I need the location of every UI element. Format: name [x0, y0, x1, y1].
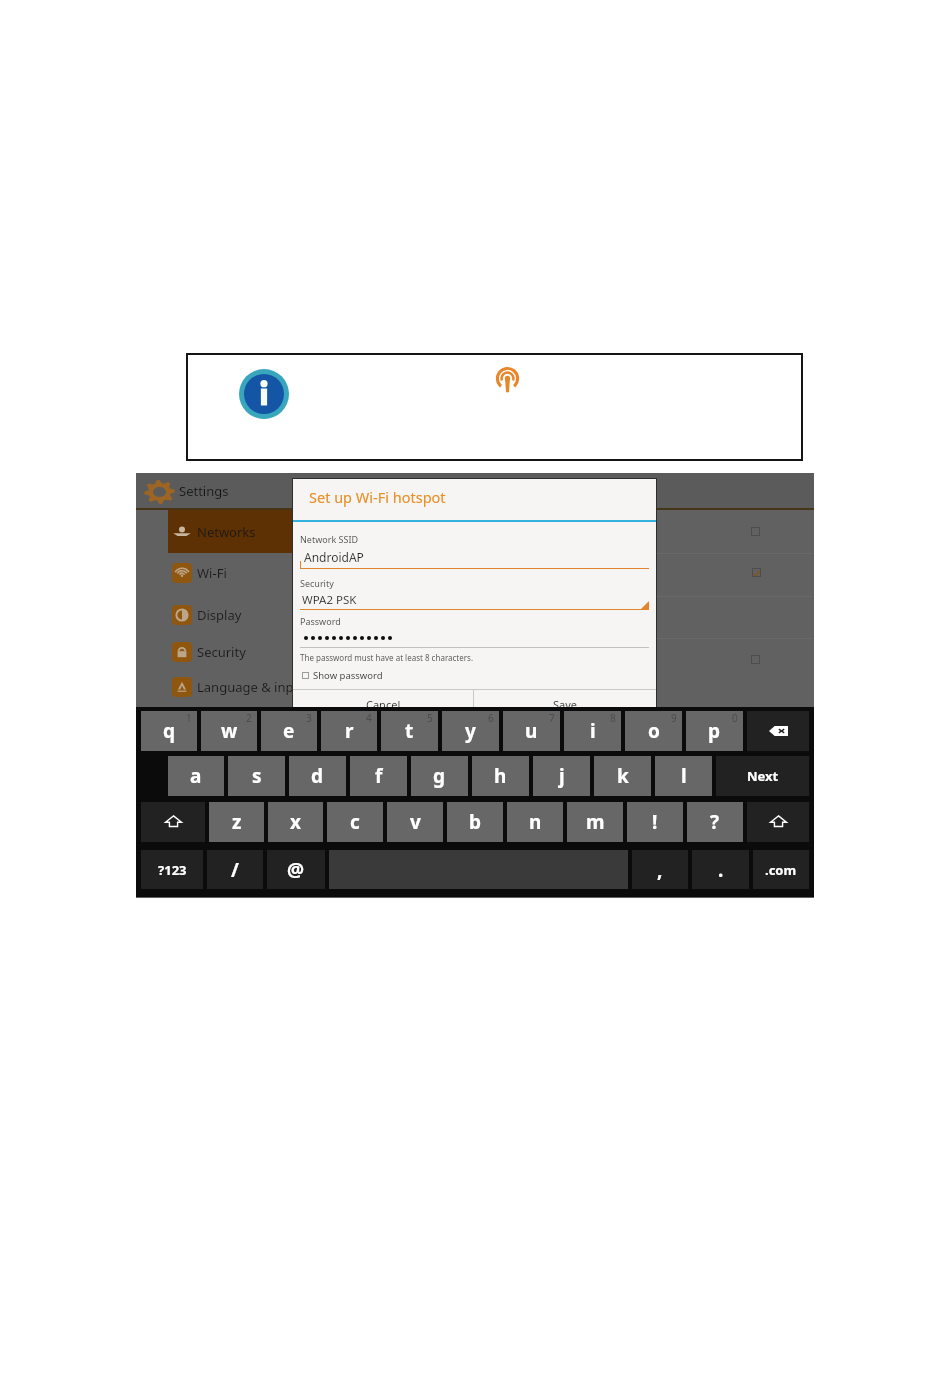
staticText: k: [617, 763, 629, 789]
button[interactable]: p: [686, 711, 743, 751]
staticText: Network SSID: [300, 533, 359, 545]
staticText: t: [405, 718, 414, 744]
staticText: b: [469, 809, 482, 835]
button[interactable]: j: [533, 756, 590, 796]
button[interactable]: Show password: [302, 669, 383, 682]
staticText: Security: [197, 643, 246, 661]
staticText: 4: [366, 711, 372, 725]
staticText: u: [525, 718, 538, 744]
button[interactable]: Checked option: [752, 568, 761, 577]
staticText: The password must have at least 8 charac…: [300, 652, 474, 663]
button[interactable]: i: [564, 711, 621, 751]
button[interactable]: [436, 510, 814, 553]
button[interactable]: Display: [136, 599, 436, 631]
button[interactable]: v: [387, 802, 443, 842]
button[interactable]: u: [503, 711, 560, 751]
staticText: i: [590, 718, 596, 744]
button[interactable]: Next: [716, 756, 809, 796]
button[interactable]: a: [168, 756, 224, 796]
staticText: f: [375, 763, 383, 789]
staticText: 0: [732, 711, 738, 725]
button[interactable]: l: [655, 756, 712, 796]
staticText: Wi-Fi: [197, 564, 227, 582]
staticText: q: [163, 718, 176, 744]
staticText: .com: [765, 861, 797, 879]
button[interactable]: !: [627, 802, 683, 842]
staticText: Cancel: [366, 697, 401, 712]
staticText: 5: [427, 711, 433, 725]
staticText: x: [290, 809, 301, 835]
staticText: j: [559, 763, 565, 789]
button[interactable]: Shift: [747, 802, 809, 842]
button[interactable]: w: [201, 711, 257, 751]
staticText: Show password: [313, 669, 383, 682]
button[interactable]: Backspace: [747, 711, 809, 751]
staticText: v: [410, 809, 421, 835]
button[interactable]: Shift: [141, 802, 205, 842]
staticText: d: [311, 763, 324, 789]
button[interactable]: Settings: [136, 473, 229, 508]
button[interactable]: g: [411, 756, 468, 796]
button[interactable]: .com: [753, 850, 809, 889]
button[interactable]: x: [268, 802, 323, 842]
button[interactable]: Language & input: [136, 671, 436, 703]
button[interactable]: [436, 553, 814, 596]
button[interactable]: h: [472, 756, 529, 796]
button[interactable]: c: [327, 802, 383, 842]
button[interactable]: @: [267, 850, 325, 889]
staticText: Next: [747, 767, 779, 785]
button[interactable]: Save: [474, 690, 656, 719]
button[interactable]: m: [567, 802, 623, 842]
button[interactable]: z: [209, 802, 264, 842]
button[interactable]: d: [289, 756, 346, 796]
button[interactable]: b: [447, 802, 503, 842]
staticText: g: [433, 763, 446, 789]
button[interactable]: /: [207, 850, 263, 889]
button[interactable]: s: [228, 756, 285, 796]
button[interactable]: ,: [632, 850, 688, 889]
staticText: /: [231, 857, 239, 883]
staticText: WPA2 PSK: [302, 592, 357, 608]
staticText: 2: [246, 711, 252, 725]
button[interactable]: Wi-Fi: [136, 557, 436, 589]
staticText: z: [232, 809, 242, 835]
button[interactable]: y: [442, 711, 499, 751]
button[interactable]: ?: [687, 802, 743, 842]
button[interactable]: r: [321, 711, 377, 751]
button[interactable]: t: [381, 711, 438, 751]
staticText: 1: [186, 711, 192, 725]
button[interactable]: ?123: [141, 850, 203, 889]
staticText: .: [718, 857, 724, 883]
button[interactable]: Security: [136, 636, 436, 668]
staticText: AndroidAP: [304, 549, 364, 565]
staticText: 6: [488, 711, 494, 725]
staticText: Set up Wi-Fi hotspot: [309, 487, 446, 507]
staticText: h: [494, 763, 507, 789]
staticText: 7: [549, 711, 555, 725]
button[interactable]: f: [350, 756, 407, 796]
staticText: 9: [671, 711, 677, 725]
staticText: Language & input: [197, 678, 307, 696]
button[interactable]: Cancel: [293, 690, 473, 719]
staticText: 3: [306, 711, 312, 725]
button[interactable]: Networks: [168, 510, 436, 553]
staticText: c: [350, 809, 360, 835]
staticText: @: [287, 857, 305, 883]
staticText: p: [708, 718, 721, 744]
staticText: w: [221, 718, 238, 744]
button[interactable]: Unchecked option: [751, 655, 760, 664]
button[interactable]: n: [507, 802, 563, 842]
button[interactable]: o: [625, 711, 682, 751]
staticText: e: [283, 718, 295, 744]
staticText: Password: [300, 615, 341, 627]
button[interactable]: .: [692, 850, 749, 889]
button[interactable]: k: [594, 756, 651, 796]
staticText: Security: [300, 577, 334, 589]
staticText: Display: [197, 606, 242, 624]
button[interactable]: q: [141, 711, 197, 751]
staticText: l: [681, 763, 687, 789]
button[interactable]: e: [261, 711, 317, 751]
button[interactable]: Unchecked option: [751, 527, 760, 536]
button[interactable]: [436, 638, 814, 680]
